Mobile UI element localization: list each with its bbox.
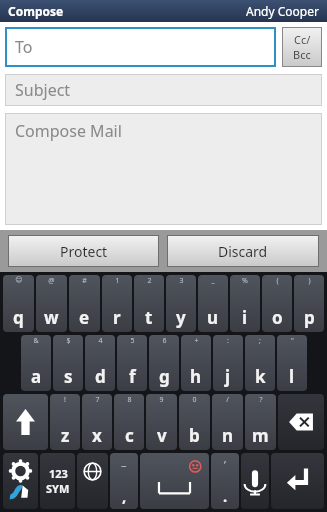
staticText: Compose: [8, 3, 64, 19]
staticText: n: [222, 424, 234, 447]
button[interactable]: 1: [102, 275, 132, 332]
staticText: k: [255, 365, 266, 388]
staticText: q: [13, 306, 24, 329]
staticText: .: [223, 486, 228, 506]
staticText: #: [82, 276, 87, 286]
staticText: o: [272, 306, 283, 329]
staticText: s: [64, 365, 73, 388]
staticText: ": [291, 336, 294, 346]
staticText: &: [33, 336, 39, 346]
button[interactable]: –: [110, 453, 138, 509]
button[interactable]: (: [262, 275, 292, 332]
button[interactable]: Space: [140, 453, 209, 509]
staticText: f: [129, 365, 136, 388]
staticText: ,: [122, 486, 127, 506]
button[interactable]: 9: [146, 394, 177, 450]
button[interactable]: Compose Mail: [5, 113, 322, 225]
staticText: a: [31, 365, 42, 388]
button[interactable]: Discard: [167, 235, 319, 267]
staticText: Cc/: [294, 32, 311, 47]
staticText: r: [113, 306, 121, 329]
button[interactable]: To: [5, 27, 276, 67]
button[interactable]: Subject: [5, 74, 322, 106]
button[interactable]: +: [181, 335, 211, 391]
button[interactable]: ": [277, 335, 307, 391]
button[interactable]: ;: [245, 335, 275, 391]
button[interactable]: 2: [134, 275, 164, 332]
staticText: ;: [259, 336, 261, 346]
button[interactable]: 6: [149, 335, 179, 391]
button[interactable]: %: [230, 275, 260, 332]
button[interactable]: /: [212, 394, 243, 450]
staticText: %: [242, 276, 248, 286]
button[interactable]: Enter: [271, 453, 324, 509]
staticText: Discard: [218, 242, 268, 261]
button[interactable]: Protect: [8, 235, 159, 267]
staticText: y: [176, 306, 186, 329]
staticText: 0: [192, 395, 197, 405]
staticText: Protect: [60, 242, 108, 261]
staticText: c: [125, 424, 134, 447]
staticText: :: [227, 336, 229, 346]
staticText: z: [61, 424, 70, 447]
staticText: p: [304, 306, 315, 329]
staticText: 3: [179, 276, 184, 286]
staticText: Andy Cooper: [246, 3, 319, 19]
staticText: 6: [162, 336, 167, 346]
staticText: w: [44, 306, 59, 329]
button[interactable]: 3: [166, 275, 196, 332]
button[interactable]: Backspace: [278, 394, 324, 450]
button[interactable]: :: [213, 335, 243, 391]
button[interactable]: ☺: [3, 275, 34, 332]
staticText: 1: [115, 276, 120, 286]
button[interactable]: !: [50, 394, 80, 450]
button[interactable]: Keyboard settings: [3, 453, 38, 509]
button[interactable]: 4: [85, 335, 115, 391]
button[interactable]: _: [198, 275, 228, 332]
button[interactable]: 7: [82, 394, 112, 450]
staticText: v: [157, 424, 167, 447]
staticText: @: [48, 276, 55, 286]
staticText: 5: [130, 336, 135, 346]
staticText: Compose Mail: [15, 120, 122, 142]
button[interactable]: Language EN: [77, 453, 108, 509]
staticText: +: [194, 336, 199, 346]
button[interactable]: Shift: [3, 394, 48, 450]
staticText: d: [95, 365, 106, 388]
button[interactable]: ): [294, 275, 324, 332]
staticText: x: [92, 424, 102, 447]
staticText: ?: [259, 395, 263, 405]
staticText: (: [276, 276, 279, 286]
button[interactable]: ?: [245, 394, 276, 450]
staticText: –: [121, 457, 127, 472]
staticText: i: [242, 306, 248, 329]
button[interactable]: 5: [117, 335, 147, 391]
staticText: /: [226, 395, 229, 405]
staticText: 2: [147, 276, 152, 286]
staticText: g: [159, 365, 170, 388]
staticText: 4: [98, 336, 103, 346]
button[interactable]: #: [69, 275, 100, 332]
staticText: b: [189, 424, 200, 447]
button[interactable]: @: [36, 275, 67, 332]
staticText: m: [252, 424, 269, 447]
staticText: Bcc: [293, 47, 311, 62]
button[interactable]: 0: [179, 394, 210, 450]
staticText: t: [145, 306, 153, 329]
staticText: To: [15, 36, 33, 58]
staticText: ): [308, 276, 311, 286]
button[interactable]: ’: [211, 453, 239, 509]
button[interactable]: 123: [40, 453, 75, 509]
staticText: SYM: [46, 481, 70, 496]
button[interactable]: Voice input: [241, 453, 269, 509]
button[interactable]: 8: [114, 394, 144, 450]
button[interactable]: &: [21, 335, 51, 391]
staticText: 9: [159, 395, 164, 405]
staticText: e: [79, 306, 90, 329]
staticText: ’: [224, 457, 226, 472]
button[interactable]: $: [53, 335, 83, 391]
staticText: Subject: [15, 79, 71, 101]
staticText: l: [289, 365, 295, 388]
staticText: u: [207, 306, 219, 329]
button[interactable]: Cc/: [282, 27, 322, 67]
